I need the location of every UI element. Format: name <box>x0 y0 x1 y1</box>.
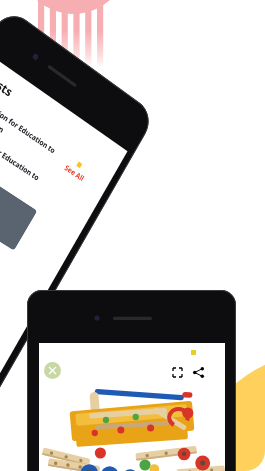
staticText: Destination for Education to Information <box>0 199 9 281</box>
button[interactable]: Close <box>44 362 61 379</box>
staticText: Posts <box>0 69 16 100</box>
button[interactable]: Destination for Education to Information <box>0 119 74 215</box>
button[interactable]: Full screen <box>169 364 185 380</box>
button[interactable]: Destination for Education to Information <box>0 228 12 322</box>
button[interactable] <box>0 182 37 251</box>
button[interactable]: Destination for Education to Information <box>0 92 89 188</box>
staticText: Destination for Education to Information <box>0 92 71 175</box>
staticText: Destination for Education to Information <box>0 119 55 203</box>
button[interactable]: Destination for Education to Information <box>0 199 29 294</box>
button[interactable]: Share <box>190 364 206 380</box>
staticText: See All <box>63 162 86 183</box>
